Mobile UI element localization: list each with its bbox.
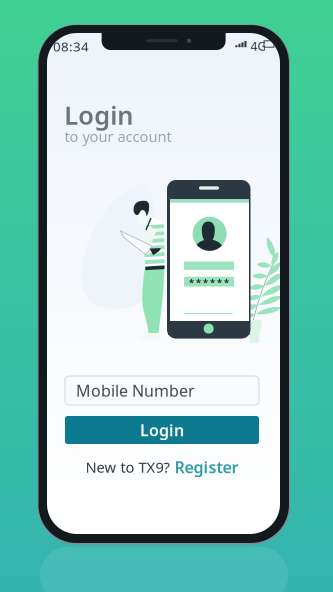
staticText: * * * * * *	[189, 276, 229, 289]
button[interactable]: Mobile Number	[65, 376, 259, 405]
staticText: to your account	[65, 126, 172, 146]
staticText: Mobile Number	[76, 380, 195, 401]
button[interactable]: New to TX9?	[65, 459, 259, 475]
staticText: 4G	[250, 38, 266, 54]
button[interactable]: Login	[65, 416, 259, 444]
staticText: Login	[140, 419, 184, 441]
staticText: New to TX9?	[85, 457, 169, 477]
staticText: Login	[64, 98, 133, 132]
staticText: 08:34	[53, 37, 89, 55]
staticText: Register	[174, 456, 238, 478]
